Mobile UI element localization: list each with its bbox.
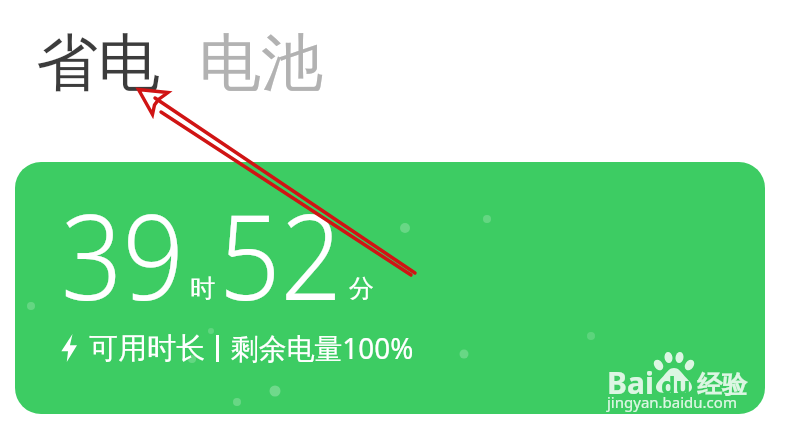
staticText: 剩余电量100% — [231, 328, 413, 368]
staticText: 经验 — [697, 369, 747, 400]
button[interactable]: 省电 — [36, 24, 160, 102]
staticText: 39 — [61, 175, 184, 334]
button[interactable]: 电池 — [199, 24, 323, 102]
staticText: 分 — [349, 273, 374, 304]
staticText: jingyan.baidu.com — [607, 392, 737, 412]
staticText: 电池 — [199, 24, 323, 102]
staticText: 52 — [219, 175, 342, 334]
staticText: du — [661, 369, 691, 400]
staticText: 省电 — [36, 24, 160, 102]
button[interactable]: 39 — [15, 162, 765, 414]
staticText: Bai — [607, 362, 654, 403]
staticText: 时 — [190, 273, 215, 304]
staticText: 可用时长 — [89, 330, 205, 367]
